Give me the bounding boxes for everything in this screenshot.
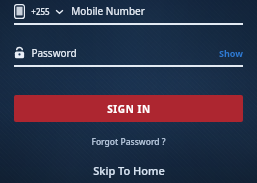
staticText: Mobile Number (71, 4, 145, 18)
staticText: +255 (31, 6, 50, 17)
other: Select country code (55, 7, 64, 16)
staticText: Skip To Home (93, 163, 165, 178)
button[interactable]: Forgot Password ? (0, 135, 257, 149)
button[interactable]: Mobile number (14, 0, 243, 22)
staticText: SIGN IN (107, 102, 151, 116)
staticText: Password (31, 46, 77, 60)
other: Mobile number (14, 4, 25, 19)
other: Password (14, 47, 25, 59)
button[interactable]: Show (219, 47, 243, 59)
staticText: Show (219, 47, 243, 59)
button[interactable]: Skip To Home (0, 161, 257, 179)
button[interactable]: Password (14, 43, 243, 63)
button[interactable]: SIGN IN (14, 95, 243, 122)
staticText: Forgot Password ? (91, 136, 166, 148)
